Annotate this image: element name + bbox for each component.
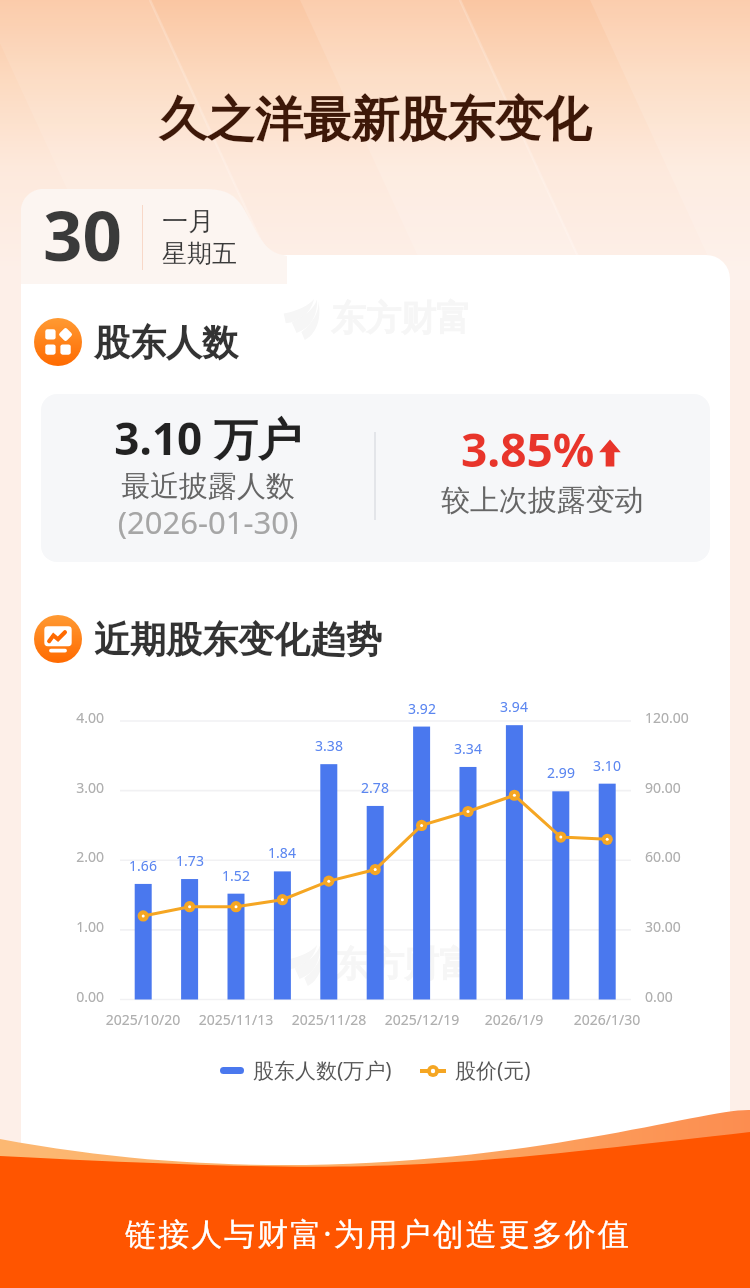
staticText: 3.34	[438, 739, 498, 758]
staticText: 星期五	[162, 238, 237, 269]
staticText: 东方财富	[334, 942, 474, 986]
staticText: 近期股东变化趋势	[94, 617, 382, 662]
staticText: 2025/12/19	[372, 1010, 472, 1029]
staticText: 2.78	[345, 778, 405, 797]
staticText: 3.38	[299, 736, 359, 755]
staticText: 较上次披露变动	[375, 482, 710, 519]
staticText: 最近披露人数	[41, 468, 375, 505]
staticText: 3.85%	[461, 418, 595, 481]
staticText: 2025/10/20	[93, 1010, 193, 1029]
staticText: 链接人与财富·为用户创造更多价值	[3, 1212, 750, 1254]
button[interactable]: 股东人数	[34, 318, 238, 366]
staticText: 1.00	[44, 917, 104, 936]
staticText: 30	[43, 187, 122, 281]
staticText: 0.00	[645, 987, 673, 1006]
staticText: 2.00	[44, 847, 104, 866]
staticText: 1.52	[206, 866, 266, 885]
staticText: 一月	[162, 205, 214, 238]
staticText: 60.00	[645, 847, 681, 866]
staticText: 3.10	[577, 756, 637, 775]
staticText: 股东人数	[94, 320, 238, 365]
staticText: 3.94	[484, 697, 544, 716]
staticText: 3.00	[44, 778, 104, 797]
staticText: 3.92	[392, 699, 452, 718]
staticText: 2025/11/28	[279, 1010, 379, 1029]
staticText: 30.00	[645, 917, 681, 936]
staticText: 4.00	[44, 708, 104, 727]
staticText: 股东人数(万户)	[253, 1056, 392, 1085]
staticText: 2.99	[531, 763, 591, 782]
staticText: 2026/1/9	[464, 1010, 564, 1029]
staticText: 2025/11/13	[186, 1010, 286, 1029]
staticText: 久之洋最新股东变化	[0, 90, 750, 150]
staticText: 1.66	[113, 856, 173, 875]
staticText: 3.10 万户	[41, 408, 375, 468]
staticText: 90.00	[645, 778, 681, 797]
staticText: (2026-01-30)	[41, 501, 375, 543]
staticText: 股价(元)	[455, 1056, 531, 1085]
staticText: 1.84	[252, 843, 312, 862]
button[interactable]: 近期股东变化趋势	[34, 615, 382, 663]
staticText: 1.73	[160, 851, 220, 870]
staticText: 2026/1/30	[557, 1010, 657, 1029]
staticText: 东方财富	[331, 296, 471, 340]
staticText: 120.00	[645, 708, 689, 727]
staticText: 0.00	[44, 987, 104, 1006]
